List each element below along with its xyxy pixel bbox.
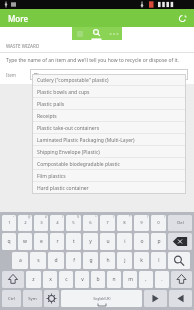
staticText: Film plastics xyxy=(37,173,66,180)
button[interactable]: List xyxy=(72,27,88,40)
staticText: s xyxy=(37,257,40,264)
staticText: k xyxy=(140,257,143,264)
button[interactable]: Move left xyxy=(144,290,167,307)
staticText: @ xyxy=(28,215,31,219)
staticText: b xyxy=(96,276,100,283)
staticText: e xyxy=(40,238,43,245)
staticText: y xyxy=(89,238,92,245)
button[interactable]: v xyxy=(75,271,89,288)
button[interactable]: More options xyxy=(105,27,122,40)
staticText: # xyxy=(45,215,47,219)
button[interactable]: , xyxy=(139,271,153,288)
staticText: Laminated Plastic Packaging (Multi-Layer… xyxy=(37,137,135,144)
staticText: 8 xyxy=(123,220,126,226)
button[interactable]: Plas xyxy=(30,69,188,80)
staticText: 9 xyxy=(140,220,143,226)
staticText: Del xyxy=(177,220,184,226)
staticText: u xyxy=(106,238,110,245)
button[interactable]: Search xyxy=(88,27,105,40)
staticText: Cutlery ("compostable" plastic) xyxy=(37,77,109,84)
button[interactable]: Keyboard settings xyxy=(44,290,59,307)
staticText: Plastic bowls and cups xyxy=(37,89,90,96)
staticText: p xyxy=(157,238,161,245)
staticText: q xyxy=(7,238,11,245)
button[interactable]: i xyxy=(117,233,132,250)
button[interactable]: Cutlery ("compostable" plastic) xyxy=(32,74,186,86)
button[interactable]: Shift xyxy=(171,271,192,288)
button[interactable]: c xyxy=(59,271,73,288)
staticText: v xyxy=(81,276,84,283)
staticText: Hard plastic container xyxy=(37,185,89,192)
staticText: ) xyxy=(164,215,165,219)
button[interactable]: t xyxy=(66,233,81,250)
staticText: Item xyxy=(6,72,30,78)
button[interactable]: 9 xyxy=(134,215,149,231)
button[interactable]: 7 xyxy=(100,215,115,231)
button[interactable]: 3 xyxy=(34,215,48,231)
button[interactable]: 4 xyxy=(50,215,64,231)
staticText: Sym xyxy=(28,296,37,302)
button[interactable]: Shift xyxy=(2,271,24,288)
staticText: r xyxy=(56,238,59,245)
button[interactable]: 2 xyxy=(18,215,32,231)
button[interactable]: 8 xyxy=(117,215,132,231)
staticText: 6 xyxy=(89,220,92,226)
button[interactable]: p xyxy=(151,233,166,250)
staticText: j xyxy=(124,257,126,264)
button[interactable]: Backspace xyxy=(168,233,192,250)
staticText: Type the name of an item and we'll tell … xyxy=(6,57,179,64)
button[interactable]: o xyxy=(134,233,149,250)
button[interactable]: e xyxy=(34,233,48,250)
button[interactable]: 6 xyxy=(83,215,98,231)
button[interactable]: u xyxy=(100,233,115,250)
button[interactable]: Laminated Plastic Packaging (Multi-Layer… xyxy=(32,134,186,146)
staticText: More xyxy=(8,13,29,24)
button[interactable]: w xyxy=(18,233,32,250)
staticText: . xyxy=(161,276,163,283)
button[interactable]: k xyxy=(134,252,149,269)
button[interactable]: Film plastics xyxy=(32,170,186,182)
button[interactable]: s xyxy=(30,252,46,269)
button[interactable]: Hard plastic container xyxy=(32,182,186,194)
button[interactable]: . xyxy=(155,271,169,288)
button[interactable]: l xyxy=(151,252,166,269)
button[interactable]: n xyxy=(107,271,121,288)
button[interactable]: 5 xyxy=(66,215,81,231)
button[interactable]: a xyxy=(12,252,28,269)
staticText: ( xyxy=(147,215,148,219)
button[interactable]: d xyxy=(48,252,64,269)
button[interactable]: f xyxy=(66,252,81,269)
button[interactable]: Move right xyxy=(169,290,192,307)
button[interactable]: Compostable biodegradable plastic xyxy=(32,158,186,170)
staticText: 3 xyxy=(40,220,43,226)
button[interactable]: r xyxy=(50,233,64,250)
button[interactable]: Shipping Envelope (Plastic) xyxy=(32,146,186,158)
button[interactable]: Receipts xyxy=(32,110,186,122)
button[interactable]: Plastic take-out containers xyxy=(32,122,186,134)
button[interactable]: b xyxy=(91,271,105,288)
staticText: % xyxy=(77,215,80,219)
button[interactable]: 1 xyxy=(2,215,16,231)
button[interactable]: Plastic pails xyxy=(32,98,186,110)
button[interactable]: Refresh xyxy=(175,11,189,25)
staticText: 7 xyxy=(106,220,109,226)
staticText: n xyxy=(112,276,116,283)
button[interactable]: 0 xyxy=(151,215,166,231)
button[interactable]: Del xyxy=(168,215,192,231)
button[interactable]: Sym xyxy=(23,290,42,307)
button[interactable]: q xyxy=(2,233,16,250)
staticText: \ xyxy=(113,215,114,219)
button[interactable]: Ctrl xyxy=(2,290,21,307)
button[interactable]: m xyxy=(123,271,137,288)
staticText: * xyxy=(129,215,131,219)
button[interactable]: z xyxy=(26,271,41,288)
button[interactable]: Search xyxy=(168,252,190,269)
button[interactable]: g xyxy=(83,252,98,269)
button[interactable]: h xyxy=(100,252,115,269)
button[interactable]: j xyxy=(117,252,132,269)
button[interactable]: y xyxy=(83,233,98,250)
button[interactable]: Plastic bowls and cups xyxy=(32,86,186,98)
button[interactable]: English(UK) xyxy=(61,290,142,307)
staticText: Plas xyxy=(34,71,45,78)
button[interactable]: x xyxy=(43,271,57,288)
